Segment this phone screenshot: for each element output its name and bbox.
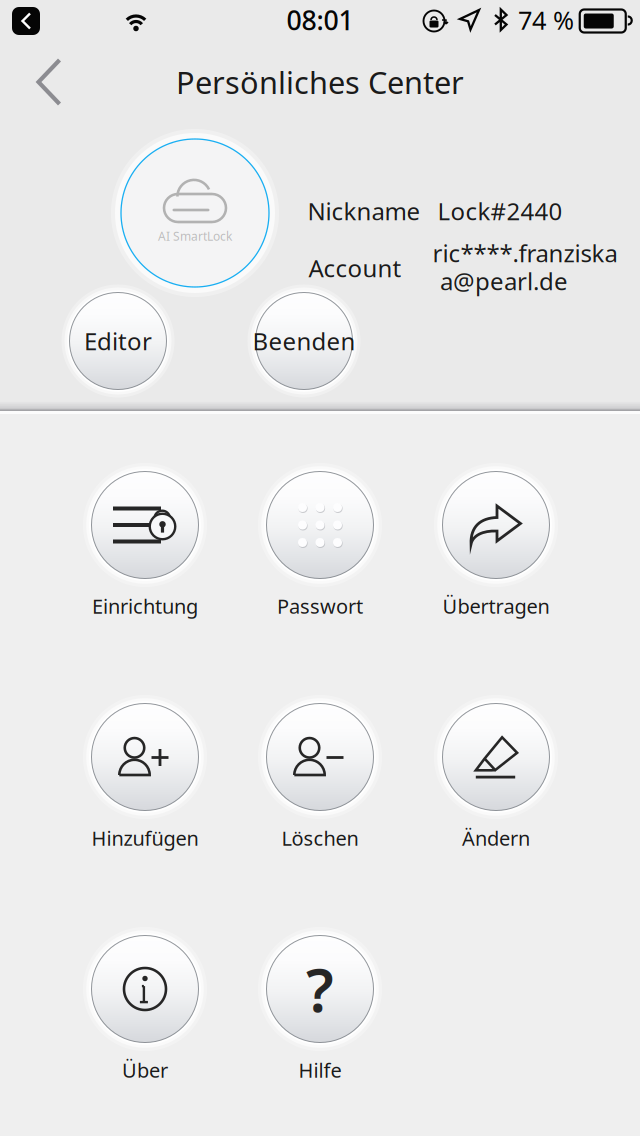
button[interactable]: Einrichtung [57, 458, 233, 624]
button[interactable]: Editor [61, 284, 174, 397]
button[interactable]: Back [13, 46, 84, 118]
button[interactable]: Hinzufügen [57, 690, 233, 856]
staticText: Hinzufügen [91, 825, 198, 851]
button[interactable]: Löschen [232, 690, 408, 856]
staticText: 74 % [518, 3, 574, 37]
staticText: Über [122, 1057, 168, 1083]
staticText: Nickname [307, 195, 420, 227]
staticText: 08:01 [286, 2, 353, 38]
staticText: Hilfe [298, 1057, 341, 1083]
staticText: Übertragen [442, 593, 549, 619]
staticText: Löschen [281, 825, 358, 851]
staticText: Lock#2440 [437, 195, 562, 227]
staticText: Passwort [277, 593, 363, 619]
button[interactable]: Passwort [232, 458, 408, 624]
staticText: Persönliches Center [176, 62, 464, 102]
staticText: Editor [84, 325, 152, 357]
staticText: a@pearl.de [440, 265, 568, 297]
button[interactable]: Profile photo [111, 129, 279, 297]
staticText: Account [308, 252, 401, 284]
button[interactable]: Beenden [247, 284, 360, 397]
button[interactable]: Über [57, 922, 233, 1088]
staticText: Ändern [462, 825, 530, 851]
button[interactable]: Ändern [408, 690, 584, 856]
button[interactable]: Back to app [12, 7, 40, 35]
staticText: Beenden [252, 325, 355, 357]
staticText: AI SmartLock [158, 228, 232, 244]
staticText: ? [306, 949, 334, 1029]
button[interactable]: ? [232, 922, 408, 1088]
staticText: ric****.franziska [432, 237, 617, 269]
staticText: Einrichtung [92, 593, 198, 619]
button[interactable]: Übertragen [408, 458, 584, 624]
